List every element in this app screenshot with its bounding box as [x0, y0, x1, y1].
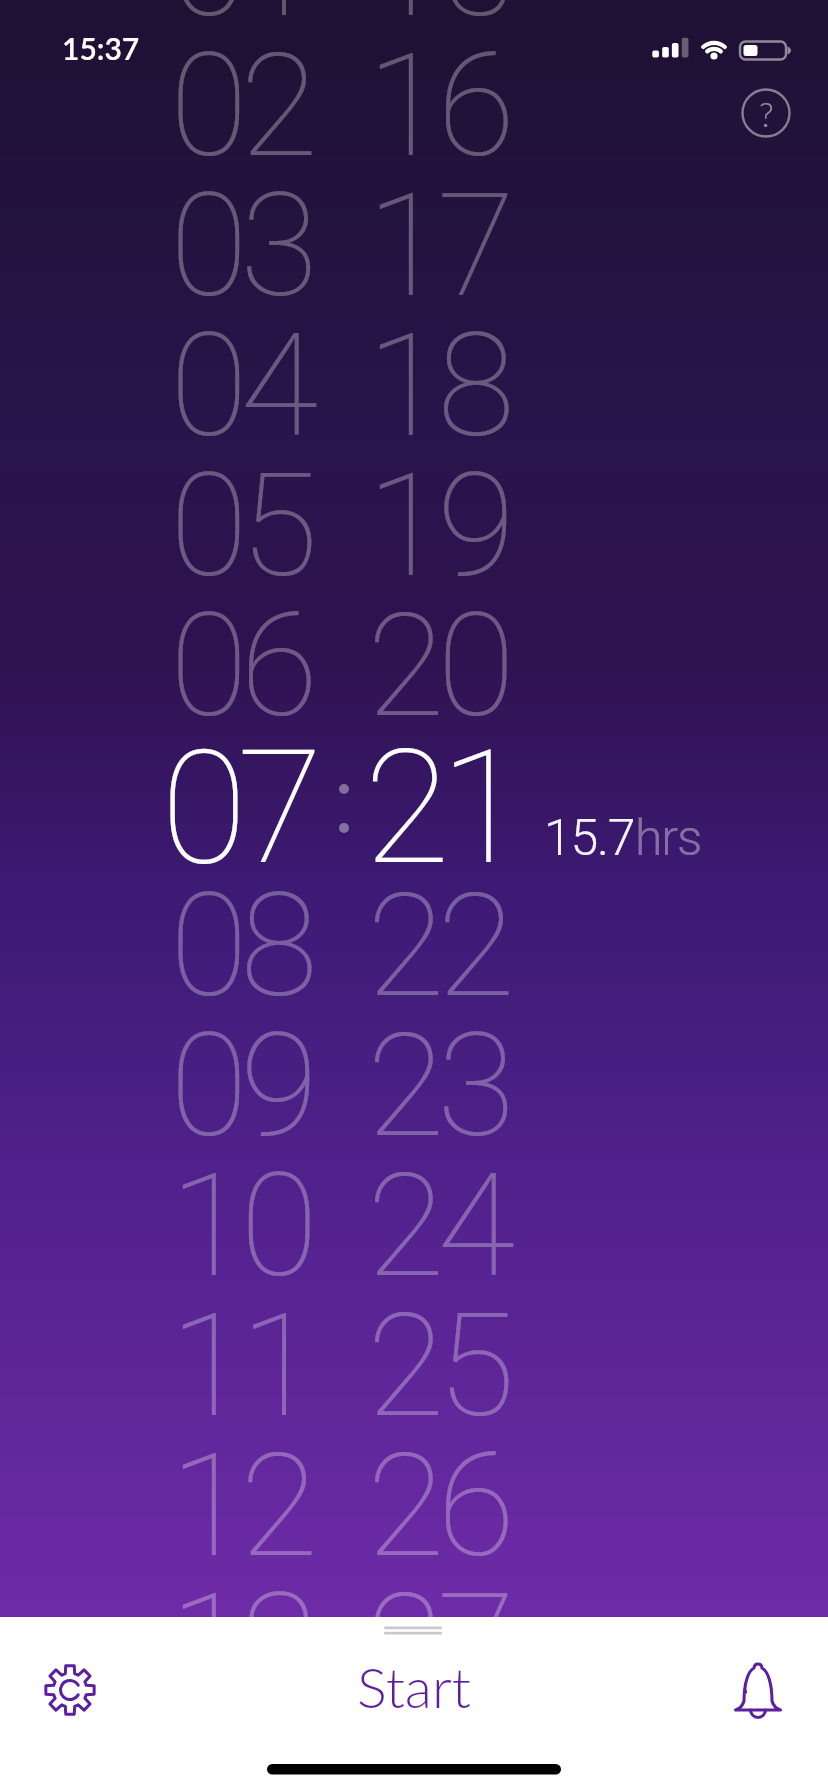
staticText: 07 [161, 716, 313, 900]
button[interactable]: Start [324, 1653, 504, 1719]
button[interactable] [38, 1658, 102, 1722]
staticText: 08 [170, 863, 311, 1029]
staticText: 24 [367, 1143, 508, 1309]
staticText: 06 [170, 583, 311, 749]
staticText: 15.7 [544, 809, 635, 868]
staticText: 26 [367, 1423, 508, 1589]
staticText: 03 [170, 163, 311, 329]
staticText: ? [759, 93, 774, 134]
staticText: 27 [367, 1563, 508, 1729]
staticText: Start [357, 1653, 471, 1719]
staticText: 11 [170, 1283, 311, 1449]
staticText: 16 [367, 23, 508, 189]
staticText: 10 [170, 1143, 311, 1309]
staticText: hrs [635, 809, 702, 868]
staticText: 20 [367, 583, 508, 749]
staticText: 17 [367, 163, 508, 329]
staticText: 13 [170, 1563, 311, 1729]
staticText: 18 [367, 303, 508, 469]
staticText: 02 [170, 23, 311, 189]
staticText: 21 [364, 716, 516, 900]
staticText: 09 [170, 1003, 311, 1169]
staticText: 15 [367, 0, 508, 49]
staticText: 22 [367, 863, 508, 1029]
staticText: 25 [367, 1283, 508, 1449]
staticText: 19 [367, 443, 508, 609]
staticText: 15:37 [62, 30, 140, 66]
staticText: 01 [170, 0, 311, 49]
button[interactable]: ? [740, 87, 792, 139]
staticText: 23 [367, 1003, 508, 1169]
staticText: 04 [170, 303, 311, 469]
staticText: 05 [170, 443, 311, 609]
button[interactable] [726, 1658, 790, 1722]
staticText: 12 [170, 1423, 311, 1589]
